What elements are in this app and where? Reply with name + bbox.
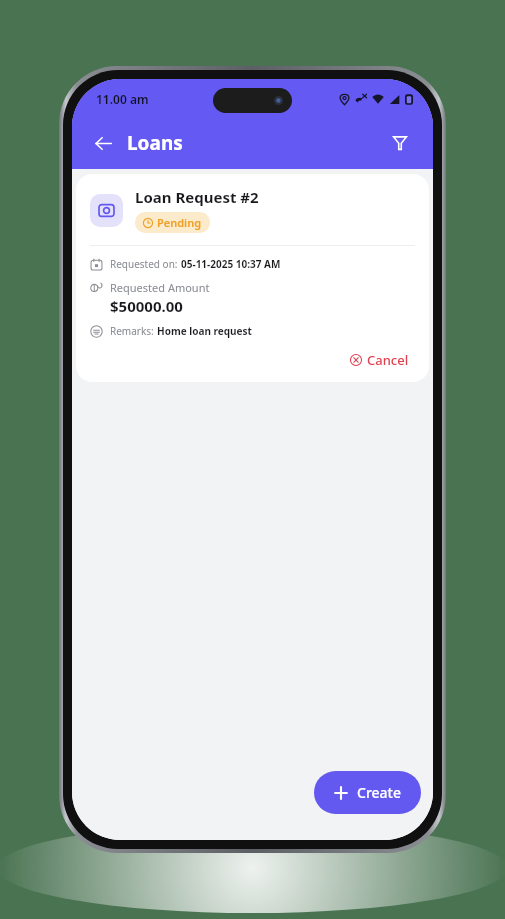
staticText: 05-11-2025 10:37 AM xyxy=(181,257,281,271)
button[interactable]: Loan Request #2 xyxy=(76,174,429,382)
staticText: Home loan request xyxy=(157,324,252,338)
staticText: Loan Request #2 xyxy=(135,187,259,207)
staticText: 11.00 am xyxy=(96,91,149,107)
staticText: Cancel xyxy=(367,351,409,369)
staticText: Create xyxy=(357,783,401,802)
staticText: Loans xyxy=(127,130,183,156)
staticText: Pending xyxy=(157,215,202,230)
button[interactable]: Filter xyxy=(383,126,417,160)
staticText: Requested on: xyxy=(110,257,181,271)
button[interactable]: Create xyxy=(314,771,421,814)
button[interactable]: Cancel xyxy=(344,347,415,373)
staticText: $50000.00 xyxy=(110,296,183,316)
button[interactable]: Back xyxy=(85,125,121,161)
staticText: Remarks: xyxy=(110,324,157,338)
staticText: Requested Amount xyxy=(110,280,210,295)
